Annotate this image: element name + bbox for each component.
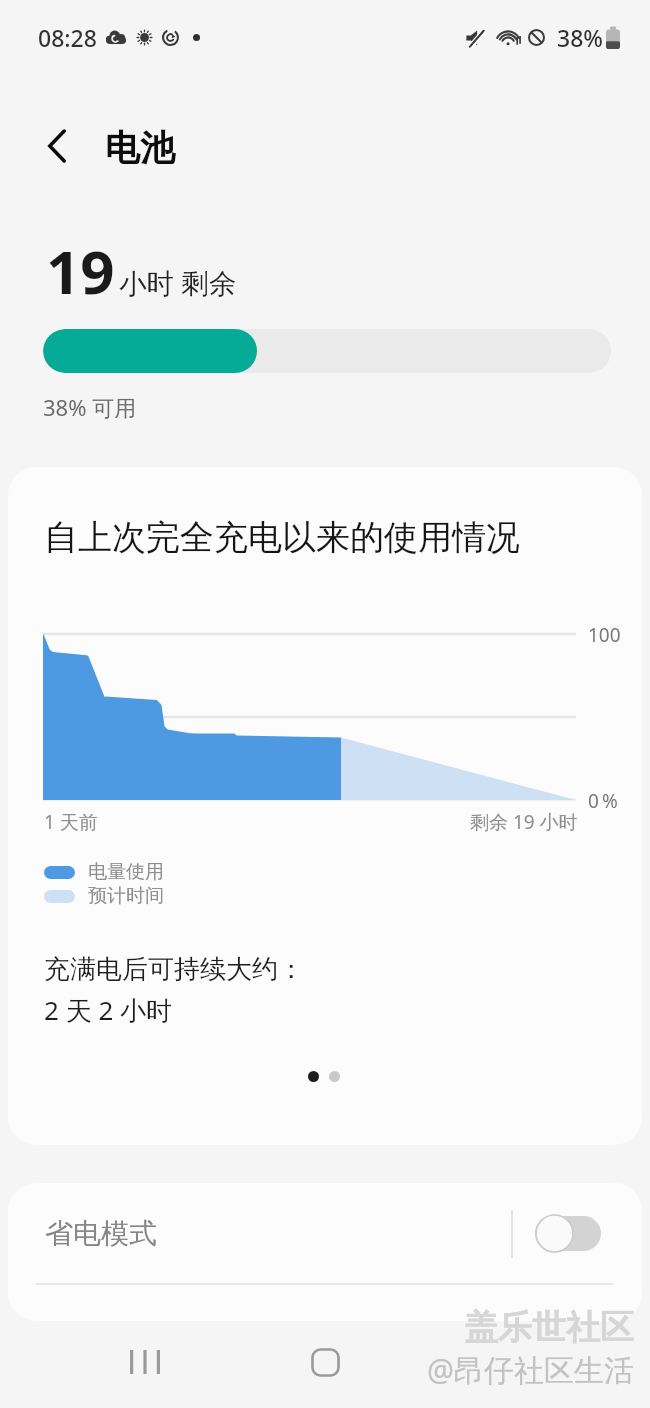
staticText: 19 — [46, 230, 115, 312]
staticText: 1 天前 — [44, 809, 98, 835]
staticText: 剩余 19 小时 — [470, 809, 578, 835]
button[interactable]: Home — [293, 1330, 357, 1394]
staticText: @昂仔社区生活 — [427, 1349, 634, 1390]
staticText: 自上次完全充电以来的使用情况 — [44, 516, 520, 559]
staticText: 省电模式 — [45, 1216, 157, 1251]
button[interactable]: Power saving toggle — [535, 1214, 601, 1253]
staticText: 0 % — [588, 788, 618, 814]
button[interactable]: 自上次完全充电以来的使用情况 — [8, 467, 642, 1145]
staticText: 充满电后可持续大约： — [44, 953, 304, 986]
staticText: 电池 — [105, 126, 175, 170]
staticText: 100 — [588, 622, 621, 648]
staticText: 38% — [557, 22, 603, 53]
button[interactable]: Back — [511, 1330, 575, 1394]
staticText: 小时 剩余 — [119, 264, 237, 302]
staticText: 盖乐世社区 — [464, 1306, 634, 1349]
staticText: 电量使用 — [88, 860, 164, 884]
button[interactable]: Back — [28, 117, 85, 174]
staticText: 预计时间 — [88, 884, 164, 908]
staticText: 38% 可用 — [43, 392, 137, 422]
button[interactable]: 省电模式 — [8, 1183, 642, 1284]
staticText: 08:28 — [38, 22, 97, 53]
button[interactable]: Recents — [113, 1330, 177, 1394]
staticText: 2 天 2 小时 — [44, 992, 173, 1028]
